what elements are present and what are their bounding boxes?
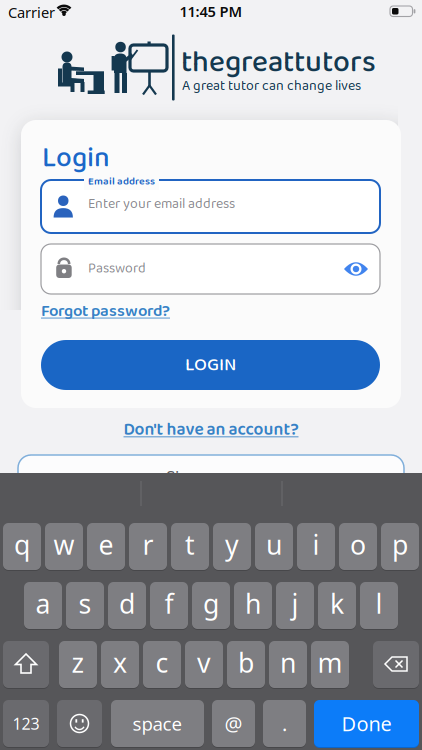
button[interactable]: Don't have an account? xyxy=(123,416,298,444)
staticText: Forgot password? xyxy=(41,298,170,325)
staticText: p xyxy=(392,527,408,562)
button[interactable]: space xyxy=(111,700,204,748)
staticText: t xyxy=(185,527,195,562)
staticText: c xyxy=(155,645,168,680)
staticText: Signup now xyxy=(166,463,256,492)
button[interactable]: Delete xyxy=(373,641,419,689)
button[interactable]: . xyxy=(263,700,306,748)
staticText: r xyxy=(142,527,153,562)
button[interactable]: a xyxy=(24,582,62,630)
button[interactable]: d xyxy=(108,582,146,630)
staticText: u xyxy=(266,527,282,562)
button[interactable]: b xyxy=(227,641,265,689)
staticText: Login xyxy=(42,136,110,181)
staticText: Carrier xyxy=(8,2,55,22)
button[interactable]: w xyxy=(45,523,83,571)
button[interactable]: x xyxy=(101,641,139,689)
button[interactable]: Forgot password? xyxy=(41,298,170,325)
button[interactable]: s xyxy=(66,582,104,630)
staticText: Don't have an account? xyxy=(123,416,298,444)
button[interactable]: r xyxy=(129,523,167,571)
button[interactable]: e xyxy=(87,523,125,571)
staticText: g xyxy=(203,586,219,621)
staticText: Email address xyxy=(88,173,155,190)
button[interactable]: g xyxy=(192,582,230,630)
button[interactable]: o xyxy=(339,523,377,571)
button[interactable]: u xyxy=(255,523,293,571)
button[interactable]: 123 xyxy=(3,700,49,748)
staticText: j xyxy=(291,586,298,621)
button[interactable]: @ xyxy=(212,700,255,748)
staticText: q xyxy=(14,527,30,562)
staticText: w xyxy=(53,527,74,562)
staticText: s xyxy=(78,586,91,621)
button[interactable]: Done xyxy=(314,700,419,748)
button[interactable]: p xyxy=(381,523,419,571)
button[interactable]: k xyxy=(318,582,356,630)
staticText: x xyxy=(113,645,127,680)
button[interactable]: Shift xyxy=(3,641,49,689)
staticText: 11:45 PM xyxy=(179,1,242,21)
staticText: . xyxy=(282,710,287,737)
staticText: k xyxy=(330,586,344,621)
staticText: y xyxy=(225,527,239,562)
button[interactable]: t xyxy=(171,523,209,571)
staticText: 123 xyxy=(12,713,39,734)
staticText: space xyxy=(132,711,182,736)
button[interactable]: Show password xyxy=(344,261,368,277)
button[interactable]: f xyxy=(150,582,188,630)
button[interactable]: y xyxy=(213,523,251,571)
button[interactable]: v xyxy=(185,641,223,689)
button[interactable]: c xyxy=(143,641,181,689)
staticText: A great tutor can change lives xyxy=(182,75,361,97)
staticText: i xyxy=(312,527,319,562)
staticText: @ xyxy=(224,710,242,737)
staticText: z xyxy=(71,645,84,680)
button[interactable]: Signup now xyxy=(18,455,404,505)
button[interactable]: z xyxy=(59,641,97,689)
button[interactable]: Emoji xyxy=(57,700,102,748)
staticText: m xyxy=(317,645,342,680)
staticText: f xyxy=(164,586,173,621)
staticText: LOGIN xyxy=(185,350,236,380)
staticText: thegreattutors xyxy=(181,39,376,87)
button[interactable]: l xyxy=(360,582,398,630)
staticText: d xyxy=(119,586,135,621)
button[interactable]: LOGIN xyxy=(41,340,380,390)
staticText: Done xyxy=(341,710,391,737)
button[interactable]: i xyxy=(297,523,335,571)
button[interactable]: n xyxy=(269,641,307,689)
staticText: b xyxy=(238,645,254,680)
button[interactable]: m xyxy=(311,641,349,689)
staticText: l xyxy=(375,586,382,621)
staticText: n xyxy=(280,645,296,680)
staticText: h xyxy=(245,586,261,621)
button[interactable]: h xyxy=(234,582,272,630)
staticText: Password xyxy=(88,257,146,280)
staticText: a xyxy=(35,586,50,621)
button[interactable]: j xyxy=(276,582,314,630)
staticText: e xyxy=(98,527,113,562)
staticText: Enter your email address xyxy=(88,193,235,215)
staticText: v xyxy=(197,645,211,680)
button[interactable]: q xyxy=(3,523,41,571)
staticText: o xyxy=(350,527,366,562)
